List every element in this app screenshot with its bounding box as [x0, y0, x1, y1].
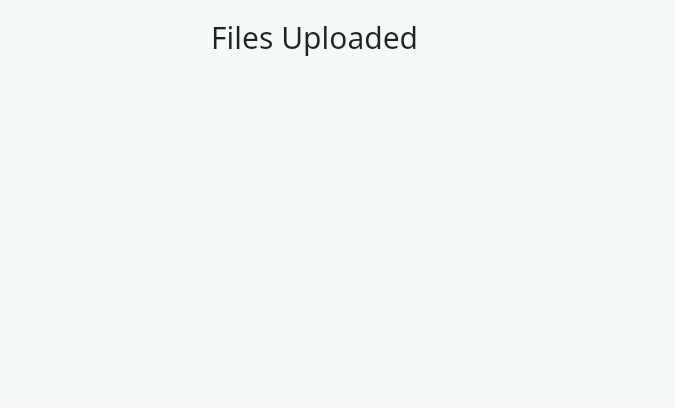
button[interactable]: Files Uploaded	[211, 17, 419, 58]
